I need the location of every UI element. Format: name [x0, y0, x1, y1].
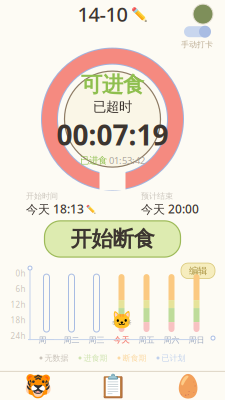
staticText: 编辑	[189, 265, 207, 277]
staticText: 📋	[98, 373, 126, 399]
staticText: 01:53:42	[109, 154, 145, 167]
staticText: 开始时间	[26, 191, 58, 201]
button[interactable]: Manual check-in toggle	[183, 25, 211, 39]
button[interactable]: 今天 18:13	[26, 201, 96, 217]
staticText: 周六	[163, 335, 179, 345]
button[interactable]: 14-10	[73, 0, 151, 29]
staticText: 18h	[10, 315, 25, 325]
staticText: 手动打卡	[181, 40, 213, 49]
staticText: 断食期	[122, 353, 146, 363]
staticText: 6h	[15, 284, 25, 294]
staticText: 今天	[113, 335, 129, 345]
button[interactable]: 编辑	[181, 263, 215, 279]
staticText: 周五	[138, 335, 154, 345]
staticText: 无数据	[44, 353, 68, 363]
staticText: 预计结束	[141, 191, 173, 201]
button[interactable]: 📋	[75, 369, 150, 400]
staticText: 今天 18:13	[26, 201, 84, 217]
staticText: 已进食	[80, 155, 107, 166]
staticText: 已超时	[93, 99, 132, 115]
staticText: 今天 20:00	[141, 201, 199, 217]
button[interactable]: 🐯	[0, 369, 75, 400]
staticText: 已计划	[161, 353, 185, 363]
staticText: 开始断食	[70, 226, 154, 252]
staticText: 00:07:19	[56, 116, 168, 153]
staticText: 0h	[15, 268, 25, 279]
staticText: 12h	[10, 299, 25, 310]
staticText: ✏️	[86, 204, 96, 213]
staticText: 周二	[63, 335, 79, 345]
staticText: 🥚	[173, 373, 201, 399]
staticText: 可进食	[81, 71, 144, 98]
staticText: 🐯	[23, 373, 51, 399]
staticText: 🐱	[110, 310, 132, 330]
staticText: 周一	[38, 335, 54, 345]
staticText: 24h	[10, 330, 25, 341]
staticText: 周日	[188, 335, 204, 345]
staticText: 14-10	[77, 1, 127, 27]
button[interactable]: 🥚	[150, 369, 225, 400]
staticText: ✏️	[130, 6, 147, 22]
button[interactable]: Profile	[193, 4, 213, 24]
staticText: 进食期	[83, 353, 107, 363]
button[interactable]: 开始断食	[44, 221, 180, 257]
staticText: 周三	[88, 335, 104, 345]
